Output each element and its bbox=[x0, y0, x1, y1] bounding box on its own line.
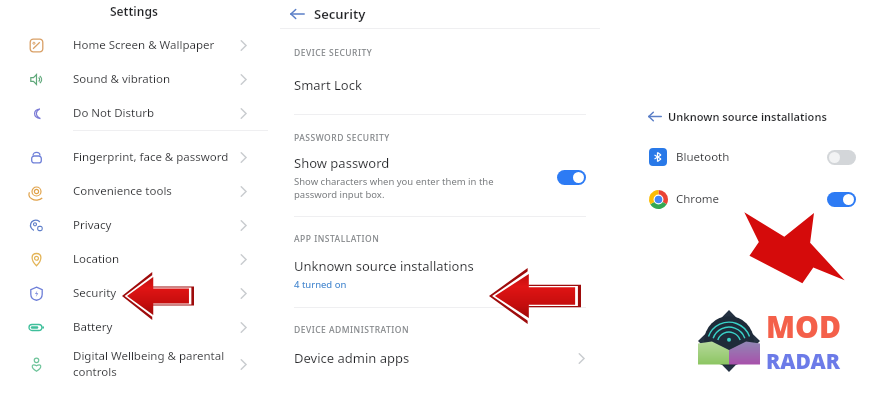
button[interactable]: Location bbox=[0, 242, 268, 276]
button[interactable]: Sound & vibration bbox=[0, 62, 268, 96]
button[interactable]: Device admin apps bbox=[280, 349, 600, 367]
button[interactable]: Convenience tools bbox=[0, 174, 268, 208]
button[interactable]: Back bbox=[640, 105, 870, 127]
staticText: APP INSTALLATION bbox=[294, 233, 380, 245]
staticText: Device admin apps bbox=[294, 349, 577, 367]
staticText: Settings bbox=[110, 3, 158, 19]
staticText: controls bbox=[73, 364, 117, 380]
button[interactable]: Fingerprint, face & password bbox=[0, 140, 268, 174]
staticText: Chrome bbox=[676, 191, 827, 207]
button[interactable]: On bbox=[827, 192, 856, 207]
staticText: Sound & vibration bbox=[73, 71, 170, 87]
button[interactable]: Off bbox=[827, 150, 856, 165]
button[interactable]: Battery bbox=[0, 310, 268, 344]
button[interactable]: Unknown source installations bbox=[280, 257, 600, 291]
staticText: Convenience tools bbox=[73, 183, 172, 199]
staticText: password input box. bbox=[294, 188, 385, 201]
button[interactable]: Security bbox=[0, 276, 268, 310]
staticText: Privacy bbox=[73, 217, 112, 233]
staticText: PASSWORD SECURITY bbox=[294, 132, 390, 144]
staticText: Bluetooth bbox=[676, 149, 827, 165]
other: Back bbox=[640, 105, 668, 127]
button[interactable]: Bluetooth bbox=[640, 143, 870, 171]
staticText: MOD bbox=[766, 306, 841, 347]
button[interactable]: Chrome bbox=[640, 185, 870, 213]
button[interactable]: Privacy bbox=[0, 208, 268, 242]
staticText: Security bbox=[314, 5, 366, 23]
staticText: Smart Lock bbox=[294, 76, 362, 94]
other: Back bbox=[280, 0, 314, 28]
staticText: Location bbox=[73, 251, 120, 267]
staticText: Do Not Disturb bbox=[73, 105, 155, 121]
staticText: Show characters when you enter them in t… bbox=[294, 175, 494, 188]
staticText: DEVICE SECURITY bbox=[294, 47, 373, 59]
button[interactable]: Show password bbox=[280, 154, 600, 201]
staticText: DEVICE ADMINISTRATION bbox=[294, 324, 410, 336]
button[interactable]: Back bbox=[280, 0, 600, 28]
staticText: Security bbox=[73, 285, 117, 301]
staticText: Fingerprint, face & password bbox=[73, 149, 229, 165]
button[interactable]: Smart Lock bbox=[280, 73, 600, 97]
staticText: 4 turned on bbox=[294, 278, 347, 291]
button[interactable]: Digital Wellbeing & parental bbox=[0, 344, 268, 384]
staticText: Home Screen & Wallpaper bbox=[73, 37, 215, 53]
staticText: RADAR bbox=[766, 347, 840, 376]
staticText: Unknown source installations bbox=[294, 257, 474, 275]
staticText: Show password bbox=[294, 154, 390, 172]
button[interactable]: Home Screen & Wallpaper bbox=[0, 28, 268, 62]
staticText: Battery bbox=[73, 319, 113, 335]
button[interactable]: On bbox=[557, 170, 586, 185]
staticText: Digital Wellbeing & parental bbox=[73, 348, 225, 364]
button[interactable]: Do Not Disturb bbox=[0, 96, 268, 130]
staticText: Unknown source installations bbox=[668, 109, 827, 124]
